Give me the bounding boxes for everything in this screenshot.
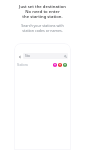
staticText: Sta [25, 54, 30, 58]
button[interactable]: Line [63, 63, 67, 67]
button[interactable]: Back [17, 54, 22, 59]
other: Search [64, 55, 67, 58]
staticText: Stations [17, 63, 28, 67]
staticText: Just set the destination No need to ente… [19, 4, 66, 19]
button[interactable]: Line [53, 63, 57, 67]
staticText: Search your stations with station codes … [21, 23, 64, 33]
button[interactable]: Line [58, 63, 62, 67]
button[interactable]: Sta [23, 53, 68, 59]
